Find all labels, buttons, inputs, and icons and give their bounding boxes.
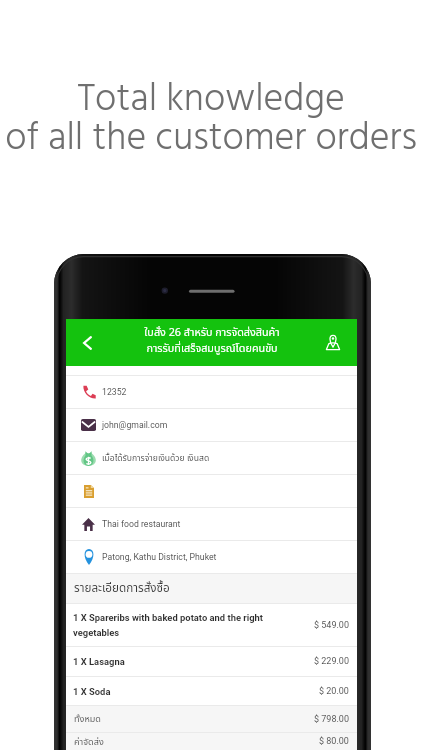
staticText: $ 549.00	[314, 620, 349, 631]
staticText: Thai food restaurant	[102, 519, 181, 529]
staticText: $ 798.00	[314, 714, 349, 725]
button[interactable]: 1 X Soda	[66, 677, 357, 705]
button[interactable]: เมื่อได้รับการจ่ายเงินด้วย เงินสด	[66, 442, 357, 474]
staticText: Patong, Kathu District, Phuket	[102, 552, 217, 562]
staticText: ค่าจัดส่ง	[74, 735, 319, 749]
staticText: 1 X Spareribs with baked potato and the …	[73, 612, 271, 638]
staticText: การรับที่เสร็จสมบูรณ์โดยคนขับ	[146, 341, 278, 357]
staticText: john@gmail.com	[102, 420, 168, 430]
button[interactable]: Thai food restaurant	[66, 508, 357, 540]
button[interactable]: Patong, Kathu District, Phuket	[66, 541, 357, 573]
staticText: รายละเอียดการสั่งซื้อ	[74, 580, 170, 598]
button[interactable]: 1 X Lasagna	[66, 647, 357, 676]
button[interactable]: 1 X Spareribs with baked potato and the …	[66, 604, 357, 646]
staticText: $ 20.00	[319, 686, 349, 697]
button[interactable]: john@gmail.com	[66, 409, 357, 441]
staticText: ทั้งหมด	[74, 712, 314, 726]
button[interactable]	[66, 475, 357, 507]
staticText: 12352	[102, 387, 127, 397]
staticText: ใบสั่ง 26 สำหรับ การจัดส่งสินค้า	[144, 325, 280, 341]
staticText: Total knowledge	[77, 70, 345, 131]
button[interactable]: ทั้งหมด	[66, 706, 357, 732]
staticText: $ 229.00	[314, 656, 349, 667]
button[interactable]: Back	[66, 319, 109, 366]
button[interactable]: 12352	[66, 376, 357, 408]
button[interactable]: Track driver	[310, 319, 357, 366]
button[interactable]: ค่าจัดส่ง	[66, 733, 357, 750]
staticText: $ 80.00	[319, 736, 349, 747]
staticText: 1 X Lasagna	[73, 656, 271, 667]
staticText: of all the customer orders	[5, 109, 417, 170]
staticText: เมื่อได้รับการจ่ายเงินด้วย เงินสด	[102, 452, 210, 465]
staticText: 1 X Soda	[73, 686, 271, 697]
